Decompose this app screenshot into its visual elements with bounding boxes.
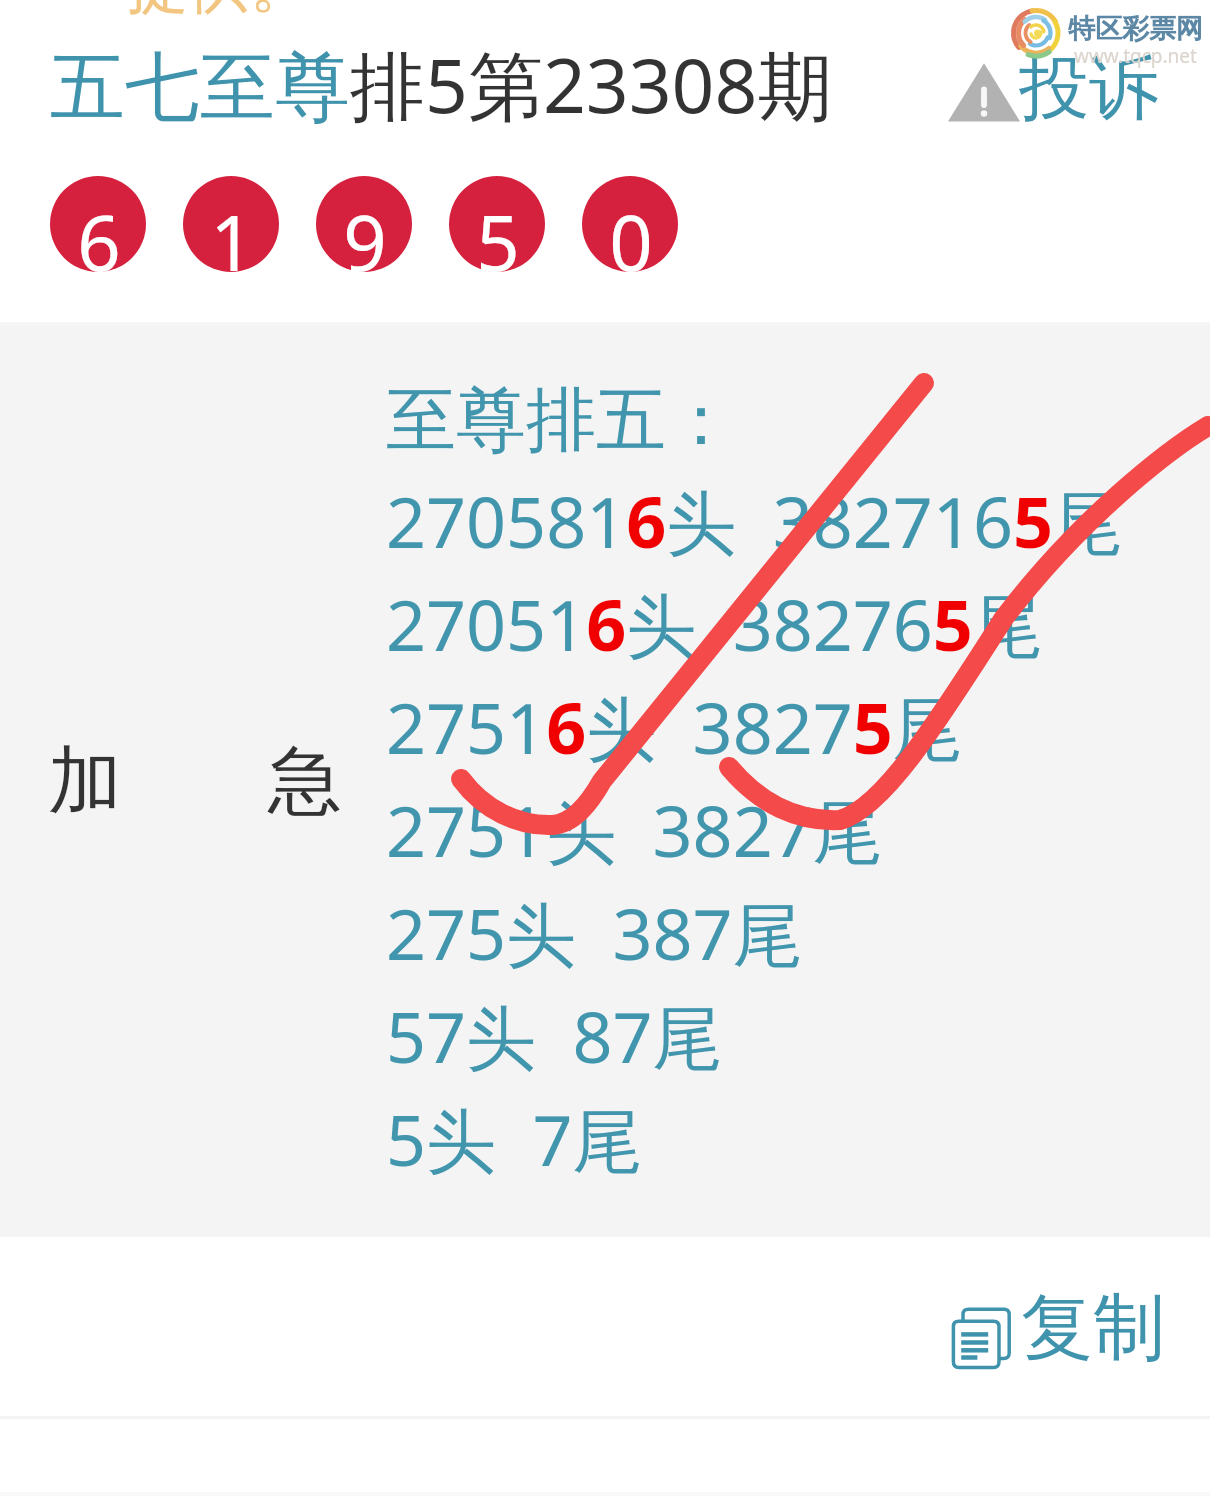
staticText: 加	[48, 735, 122, 828]
staticText: 9	[317, 190, 413, 294]
staticText: 急	[268, 735, 342, 828]
staticText: 复制	[1021, 1283, 1165, 1374]
staticText: 至尊排五： 2705816头 3827165尾 270516头 382765尾 …	[386, 377, 1123, 1187]
button[interactable]: Number 6	[50, 176, 146, 272]
staticText: 特区彩票网	[1068, 12, 1203, 46]
staticText: www.tqcp.net	[1074, 43, 1197, 69]
staticText: 投诉	[1019, 45, 1159, 125]
staticText: 五七至尊排5第23308期	[50, 33, 833, 135]
staticText: 5	[450, 190, 546, 294]
staticText: 0	[583, 190, 679, 294]
button[interactable]: Number 5	[449, 176, 545, 272]
staticText: 6	[51, 190, 147, 294]
button[interactable]: Number 9	[316, 176, 412, 272]
button[interactable]: Number 1	[183, 176, 279, 272]
staticText: 1	[184, 190, 280, 294]
other: Copy	[951, 1302, 1011, 1362]
staticText: 提供。	[126, 0, 312, 24]
button[interactable]: 投诉	[944, 50, 1164, 130]
button[interactable]: Number 0	[582, 176, 678, 272]
button[interactable]: Copy	[940, 1282, 1170, 1382]
